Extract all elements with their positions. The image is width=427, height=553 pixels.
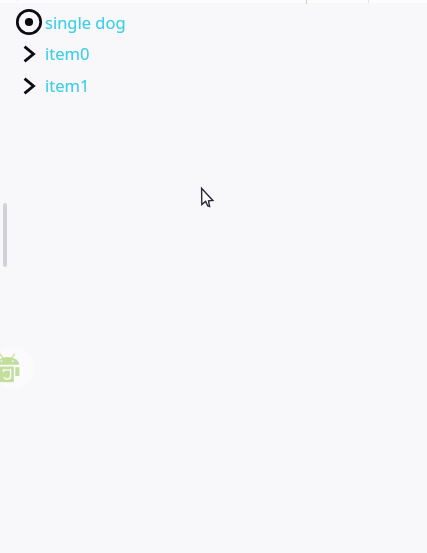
staticText: item0 — [45, 42, 90, 64]
button[interactable]: Expand item1 — [0, 75, 427, 105]
other: Expand item1 — [23, 77, 35, 95]
button[interactable]: Selected node — [0, 6, 427, 38]
button[interactable]: Android app node — [0, 347, 34, 389]
other: Expand item0 — [23, 45, 35, 63]
staticText: item1 — [45, 74, 90, 96]
staticText: single dog — [45, 11, 126, 33]
button[interactable]: Expand item0 — [0, 43, 427, 73]
other: Selected node — [16, 9, 42, 35]
